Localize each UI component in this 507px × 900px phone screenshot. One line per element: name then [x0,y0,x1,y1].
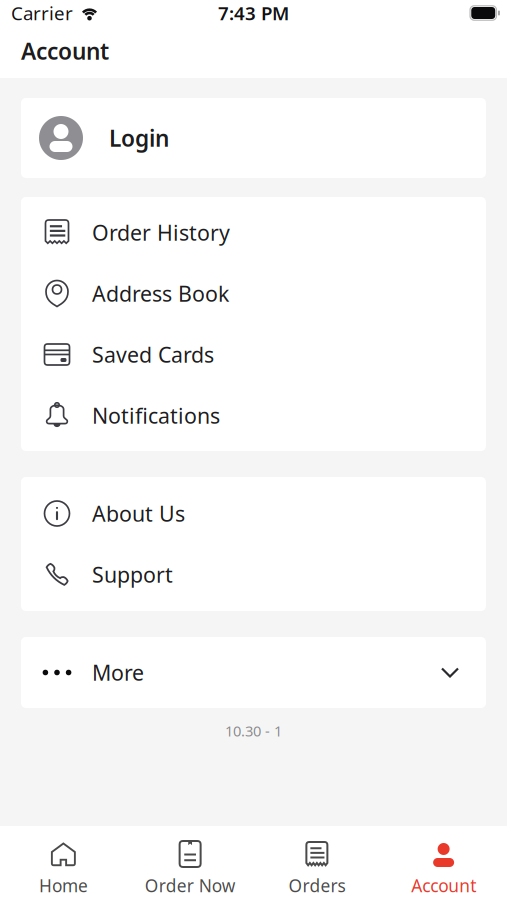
staticText: Account [21,36,109,66]
button[interactable]: Orders [253,820,380,900]
button[interactable]: Home [0,820,127,900]
staticText: 10.30 - 1 [225,721,282,740]
staticText: More [92,658,144,687]
staticText: Order History [92,218,230,247]
button[interactable]: Address Book [21,263,486,324]
staticText: About Us [92,499,185,528]
button[interactable]: About Us [21,483,486,544]
staticText: Account [411,874,476,897]
staticText: Carrier [11,1,73,25]
button[interactable]: Account [380,820,507,900]
staticText: Notifications [92,401,220,430]
staticText: Support [92,560,173,589]
staticText: 7:43 PM [218,1,289,25]
staticText: Order Now [145,874,236,897]
staticText: Login [109,123,169,153]
staticText: Orders [288,874,345,897]
button[interactable]: Notifications [21,385,486,446]
button[interactable]: Order Now [127,820,254,900]
button[interactable]: Login [21,98,486,178]
staticText: Saved Cards [92,340,214,369]
staticText: Home [39,874,88,897]
button[interactable]: Order History [21,202,486,263]
button[interactable]: Saved Cards [21,324,486,385]
staticText: Address Book [92,279,229,308]
button[interactable]: More [21,642,486,703]
button[interactable]: Support [21,544,486,605]
